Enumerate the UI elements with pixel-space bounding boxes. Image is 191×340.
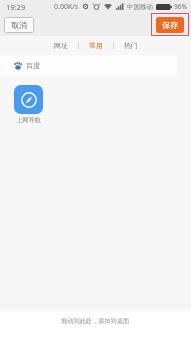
staticText: 百度 — [26, 61, 40, 70]
button[interactable]: 百度 — [0, 55, 177, 75]
staticText: 96% — [174, 2, 187, 11]
staticText: 19:29 — [6, 2, 26, 12]
staticText: 网址 — [54, 41, 68, 50]
button[interactable]: 热门 — [114, 37, 148, 54]
staticText: 热门 — [124, 41, 138, 50]
button[interactable]: 上网导航 — [14, 85, 43, 124]
staticText: 中国移动 — [127, 3, 153, 11]
staticText: 取消 — [11, 20, 27, 30]
staticText: 保存 — [162, 20, 178, 30]
button[interactable]: 常用 — [79, 37, 113, 54]
button[interactable]: 网址 — [44, 37, 78, 54]
staticText: 上网导航 — [16, 116, 41, 124]
staticText: 常用 — [89, 41, 103, 50]
staticText: 0.00K/s — [54, 2, 79, 12]
button[interactable]: 取消 — [4, 17, 34, 33]
button[interactable]: 保存 — [156, 17, 184, 33]
staticText: 拖动到此处，添加到桌面 — [61, 317, 130, 325]
